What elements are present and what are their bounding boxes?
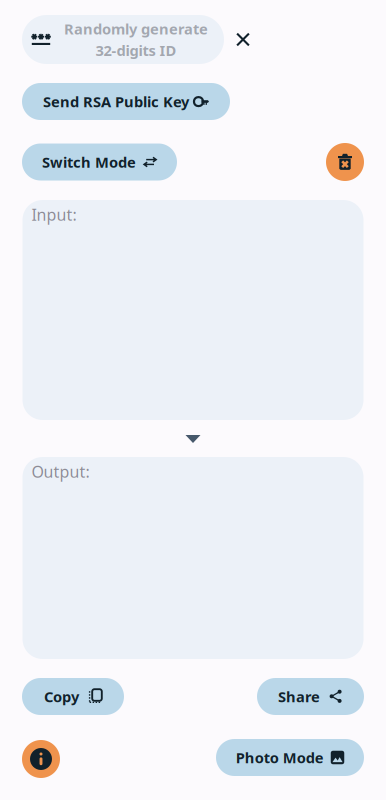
staticText: Photo Mode [236, 748, 324, 767]
button[interactable]: Send RSA Public Key [22, 83, 230, 120]
staticText: Input: [31, 204, 76, 225]
staticText: Share [278, 687, 320, 706]
staticText: Send RSA Public Key [43, 92, 189, 111]
staticText: Switch Mode [42, 152, 136, 172]
button[interactable]: Info [22, 740, 60, 778]
button[interactable]: Close [230, 26, 256, 52]
button[interactable]: Clear [326, 143, 364, 181]
staticText: Output: [31, 461, 89, 482]
button[interactable]: Randomly generate [22, 15, 224, 64]
button[interactable]: Switch Mode [22, 143, 177, 180]
button[interactable]: Share [257, 678, 364, 715]
button[interactable]: Photo Mode [216, 739, 364, 776]
button[interactable]: Copy [22, 678, 124, 715]
staticText: Randomly generate [64, 19, 208, 38]
staticText: Copy [44, 687, 79, 706]
staticText: 32-digits ID [95, 40, 176, 60]
